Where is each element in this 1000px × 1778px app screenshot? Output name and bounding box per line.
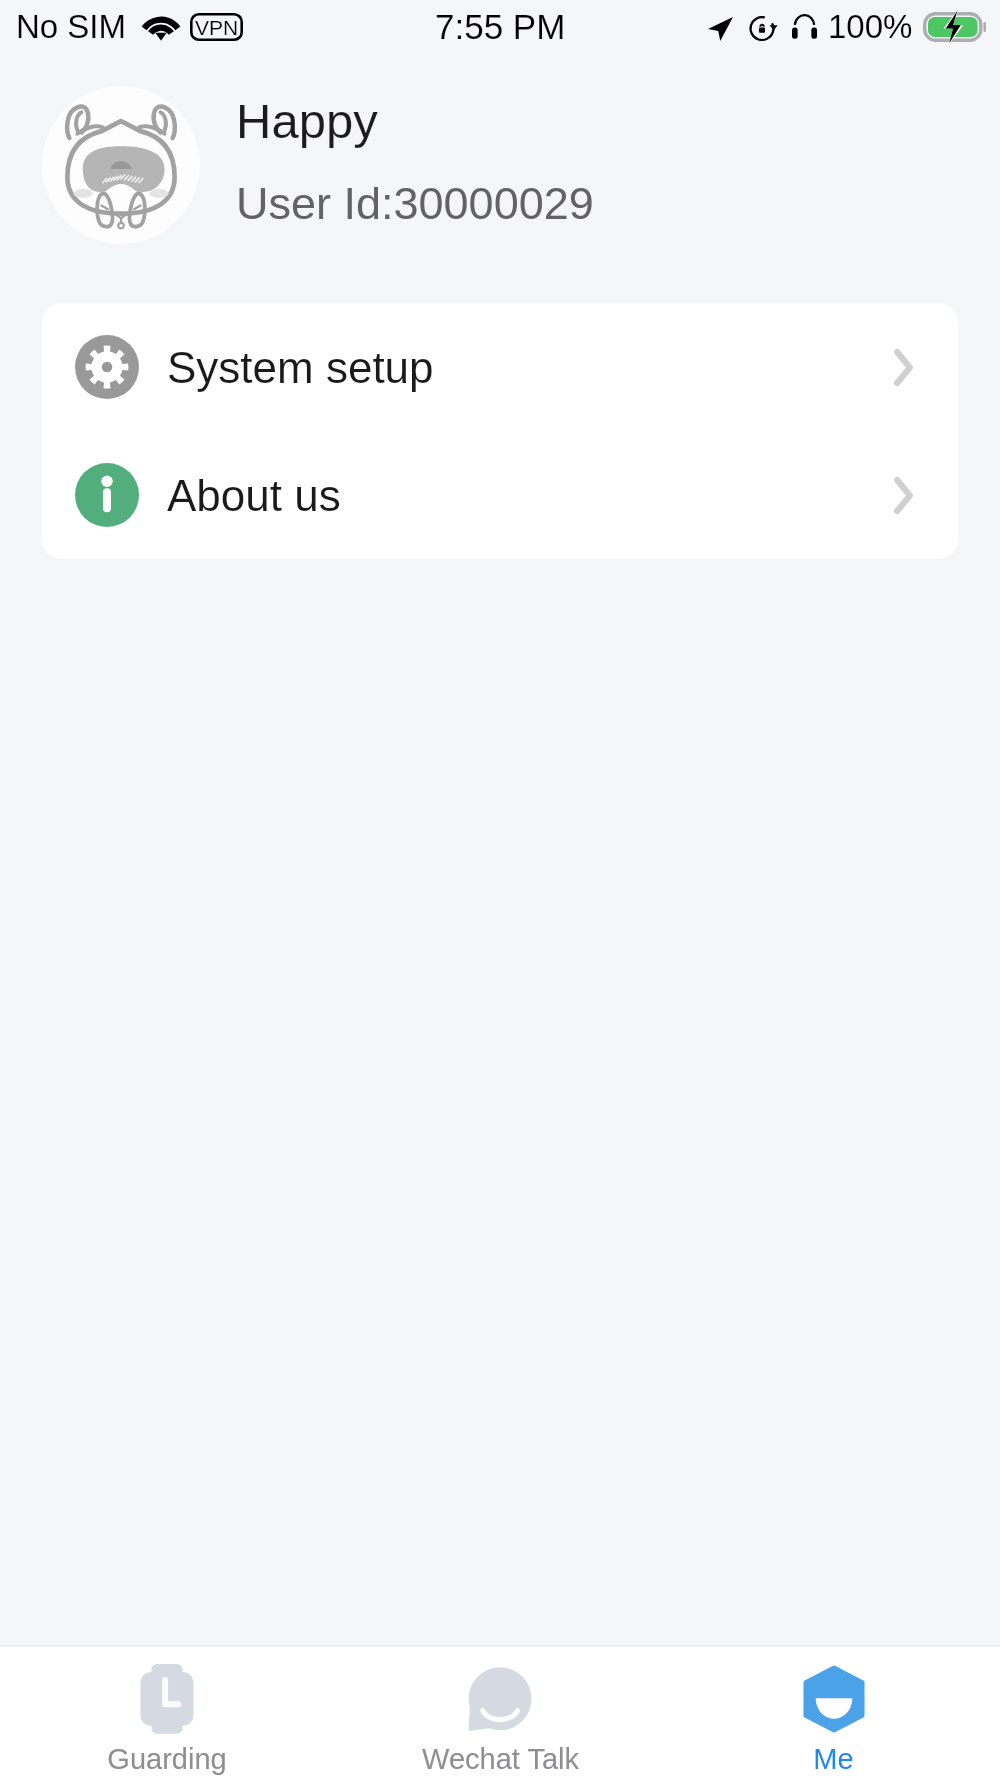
staticText: Wechat Talk: [422, 1743, 579, 1775]
staticText: 100%: [828, 8, 913, 45]
button[interactable]: Me: [667, 1647, 1000, 1778]
button[interactable]: Wechat Talk: [334, 1647, 667, 1778]
staticText: VPN: [195, 16, 239, 39]
staticText: 7:55 PM: [435, 7, 566, 46]
staticText: Guarding: [107, 1743, 227, 1775]
staticText: User Id:30000029: [236, 178, 594, 228]
button[interactable]: System setup: [42, 303, 958, 431]
staticText: Me: [813, 1743, 854, 1775]
button[interactable]: About us: [42, 431, 958, 559]
staticText: No SIM: [16, 8, 127, 45]
staticText: System setup: [167, 343, 434, 392]
staticText: Happy: [236, 94, 378, 149]
button[interactable]: Guarding: [0, 1647, 334, 1778]
staticText: About us: [167, 471, 341, 520]
